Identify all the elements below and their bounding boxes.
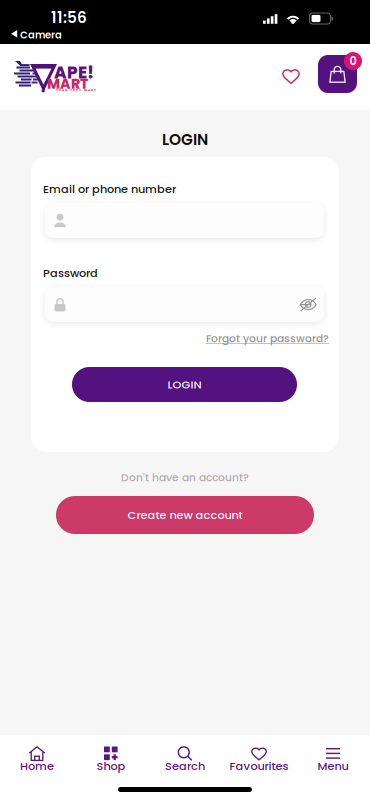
staticText: Home bbox=[20, 758, 54, 774]
staticText: APE! bbox=[54, 61, 94, 84]
staticText: LOGIN bbox=[162, 129, 208, 150]
staticText: Favourites bbox=[229, 758, 288, 774]
staticText: Shop bbox=[96, 758, 125, 774]
button[interactable]: LOGIN bbox=[72, 367, 297, 402]
staticText: Don't have an account? bbox=[121, 470, 249, 485]
button[interactable]: Forgot your password? bbox=[206, 331, 329, 346]
staticText: T H A N T H E Y W A N T bbox=[56, 88, 96, 92]
staticText: LOGIN bbox=[167, 377, 201, 392]
staticText: Menu bbox=[317, 758, 348, 774]
button[interactable]: Search bbox=[148, 737, 222, 789]
staticText: 11:56 bbox=[51, 7, 87, 28]
button[interactable]: Menu bbox=[296, 737, 370, 789]
button[interactable]: Favourites bbox=[222, 737, 296, 789]
button[interactable]: Favourites bbox=[271, 56, 311, 96]
staticText: Email or phone number bbox=[43, 181, 176, 197]
staticText: Forgot your password? bbox=[206, 331, 329, 346]
staticText: Password bbox=[43, 265, 98, 281]
staticText: 0 bbox=[349, 53, 356, 69]
button[interactable]: Cart, 0 items bbox=[318, 48, 366, 98]
button[interactable]: Home bbox=[0, 737, 74, 789]
staticText: Camera bbox=[20, 28, 62, 42]
button[interactable]: Show password bbox=[299, 297, 316, 312]
button[interactable]: Shop bbox=[74, 737, 148, 789]
staticText: MART bbox=[47, 74, 88, 94]
button[interactable]: Create new account bbox=[56, 496, 314, 534]
staticText: Search bbox=[165, 758, 205, 774]
staticText: Create new account bbox=[127, 507, 242, 523]
